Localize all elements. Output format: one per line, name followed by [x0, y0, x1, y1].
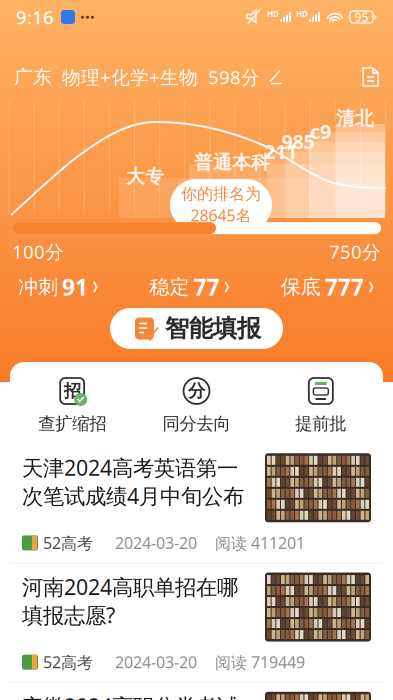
- staticText: 211: [264, 138, 297, 164]
- staticText: 2024-03-20: [115, 532, 197, 553]
- button[interactable]: 稳定: [149, 272, 231, 302]
- button[interactable]: 报告: [362, 67, 379, 87]
- staticText: HD: [267, 9, 279, 19]
- staticText: HD: [296, 9, 308, 19]
- staticText: 95: [354, 9, 368, 25]
- staticText: 777: [325, 272, 364, 302]
- staticText: 阅读 411201: [215, 532, 305, 553]
- staticText: 100分: [12, 239, 64, 264]
- staticText: 阅读 719449: [215, 651, 305, 673]
- button[interactable]: 天津2024高考英语第一次笔试成绩4月中旬公布: [10, 444, 383, 563]
- button[interactable]: 广东: [14, 65, 283, 89]
- staticText: 河南2024高职单招在哪填报志愿?: [22, 572, 238, 629]
- button[interactable]: 分: [134, 376, 259, 434]
- staticText: 清北: [336, 107, 374, 130]
- staticText: 同分去向: [162, 413, 230, 434]
- staticText: 保底: [281, 275, 321, 299]
- staticText: 77: [193, 272, 219, 302]
- staticText: c9: [310, 118, 331, 144]
- button[interactable]: 智能填报: [110, 308, 283, 349]
- staticText: 查扩缩招: [38, 413, 106, 434]
- staticText: 大专: [126, 165, 164, 188]
- button[interactable]: 安徽2024高职分类考试成绩查询入口：http://cx.ahzsks.cn: [10, 683, 383, 700]
- staticText: 750分: [329, 239, 381, 264]
- staticText: 598分: [208, 65, 260, 89]
- staticText: 分: [188, 380, 205, 402]
- staticText: 智能填报: [165, 314, 261, 343]
- staticText: 28645名: [190, 205, 251, 226]
- staticText: 提前批: [295, 413, 346, 434]
- staticText: 天津2024高考英语第一次笔试成绩4月中旬公布: [22, 453, 244, 510]
- button[interactable]: 提前批: [259, 376, 383, 434]
- staticText: 52高考: [43, 532, 93, 553]
- staticText: 你的排名为: [181, 184, 261, 204]
- staticText: 物理+化学+生物: [62, 65, 198, 89]
- staticText: ···: [80, 5, 95, 28]
- staticText: 9:16: [16, 5, 54, 29]
- button[interactable]: 河南2024高职单招在哪填报志愿?: [10, 563, 383, 683]
- staticText: 52高考: [43, 651, 93, 673]
- staticText: 91: [62, 272, 88, 302]
- staticText: 冲刺: [18, 275, 58, 299]
- staticText: 招: [64, 380, 81, 402]
- staticText: 2024-03-20: [115, 651, 197, 673]
- staticText: 稳定: [149, 275, 189, 299]
- button[interactable]: 招: [10, 376, 134, 434]
- staticText: 985: [281, 128, 314, 154]
- button[interactable]: 保底: [281, 272, 375, 302]
- staticText: 安徽2024高职分类考试成绩查询入口：http://cx.ahzsks.cn: [22, 692, 238, 700]
- button[interactable]: 冲刺: [18, 272, 99, 302]
- staticText: 广东: [14, 65, 52, 88]
- staticText: 普通本科: [194, 151, 270, 174]
